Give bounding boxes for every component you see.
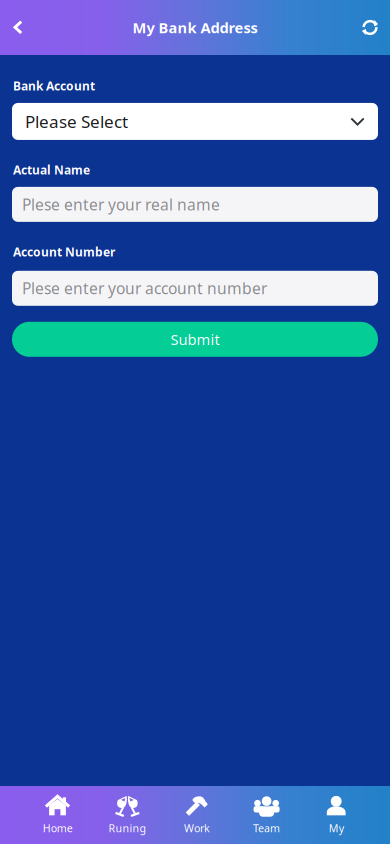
button[interactable]: My — [301, 786, 371, 844]
staticText: Account Number — [13, 244, 115, 260]
staticText: Bank Account — [13, 78, 95, 94]
staticText: Submit — [170, 330, 219, 349]
button[interactable]: Runing — [93, 786, 162, 844]
button[interactable]: Home — [23, 786, 93, 844]
button[interactable]: Back — [1, 5, 35, 49]
staticText: Please Select — [25, 110, 128, 133]
staticText: Work — [184, 821, 210, 835]
button[interactable]: Team — [232, 786, 301, 844]
button[interactable]: Please Select — [12, 103, 378, 140]
staticText: Team — [253, 821, 280, 835]
button[interactable]: Refresh — [351, 5, 389, 49]
staticText: Home — [43, 821, 73, 835]
staticText: My — [329, 821, 344, 835]
staticText: Plese enter your account number — [22, 278, 267, 299]
staticText: Actual Name — [13, 162, 90, 178]
staticText: Plese enter your real name — [22, 194, 220, 215]
button[interactable]: Work — [162, 786, 232, 844]
button[interactable]: Submit — [12, 322, 378, 357]
staticText: Runing — [108, 821, 146, 835]
staticText: My Bank Address — [132, 18, 257, 37]
